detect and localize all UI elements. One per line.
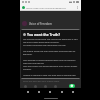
button[interactable]: More options: [75, 5, 79, 9]
button[interactable]: Navigation: [36, 89, 42, 95]
button[interactable]: Share: [33, 84, 37, 88]
button[interactable]: Share on WhatsApp: [69, 84, 75, 88]
staticText: You want the Truth?: [27, 32, 61, 36]
button[interactable]: https://gab.com/VoiceOfFreedom/p: [22, 4, 79, 10]
staticText: Voice of Freedom: [29, 22, 52, 26]
button[interactable]: Share: [43, 84, 47, 88]
staticText: The massive surveillance and censorship …: [23, 38, 78, 76]
button[interactable]: Voice of Freedom: [22, 21, 79, 26]
staticText: Share this post with your friends today: [23, 80, 60, 83]
button[interactable]: Navigation: [47, 89, 53, 95]
button[interactable]: Navigation: [25, 89, 31, 95]
staticText: https://gab.com/VoiceOfFreedom/p: [26, 6, 66, 9]
button[interactable]: Navigation: [70, 89, 76, 95]
button[interactable]: Share: [53, 84, 57, 88]
button[interactable]: Navigation: [59, 89, 65, 95]
button[interactable]: Share: [23, 84, 27, 88]
